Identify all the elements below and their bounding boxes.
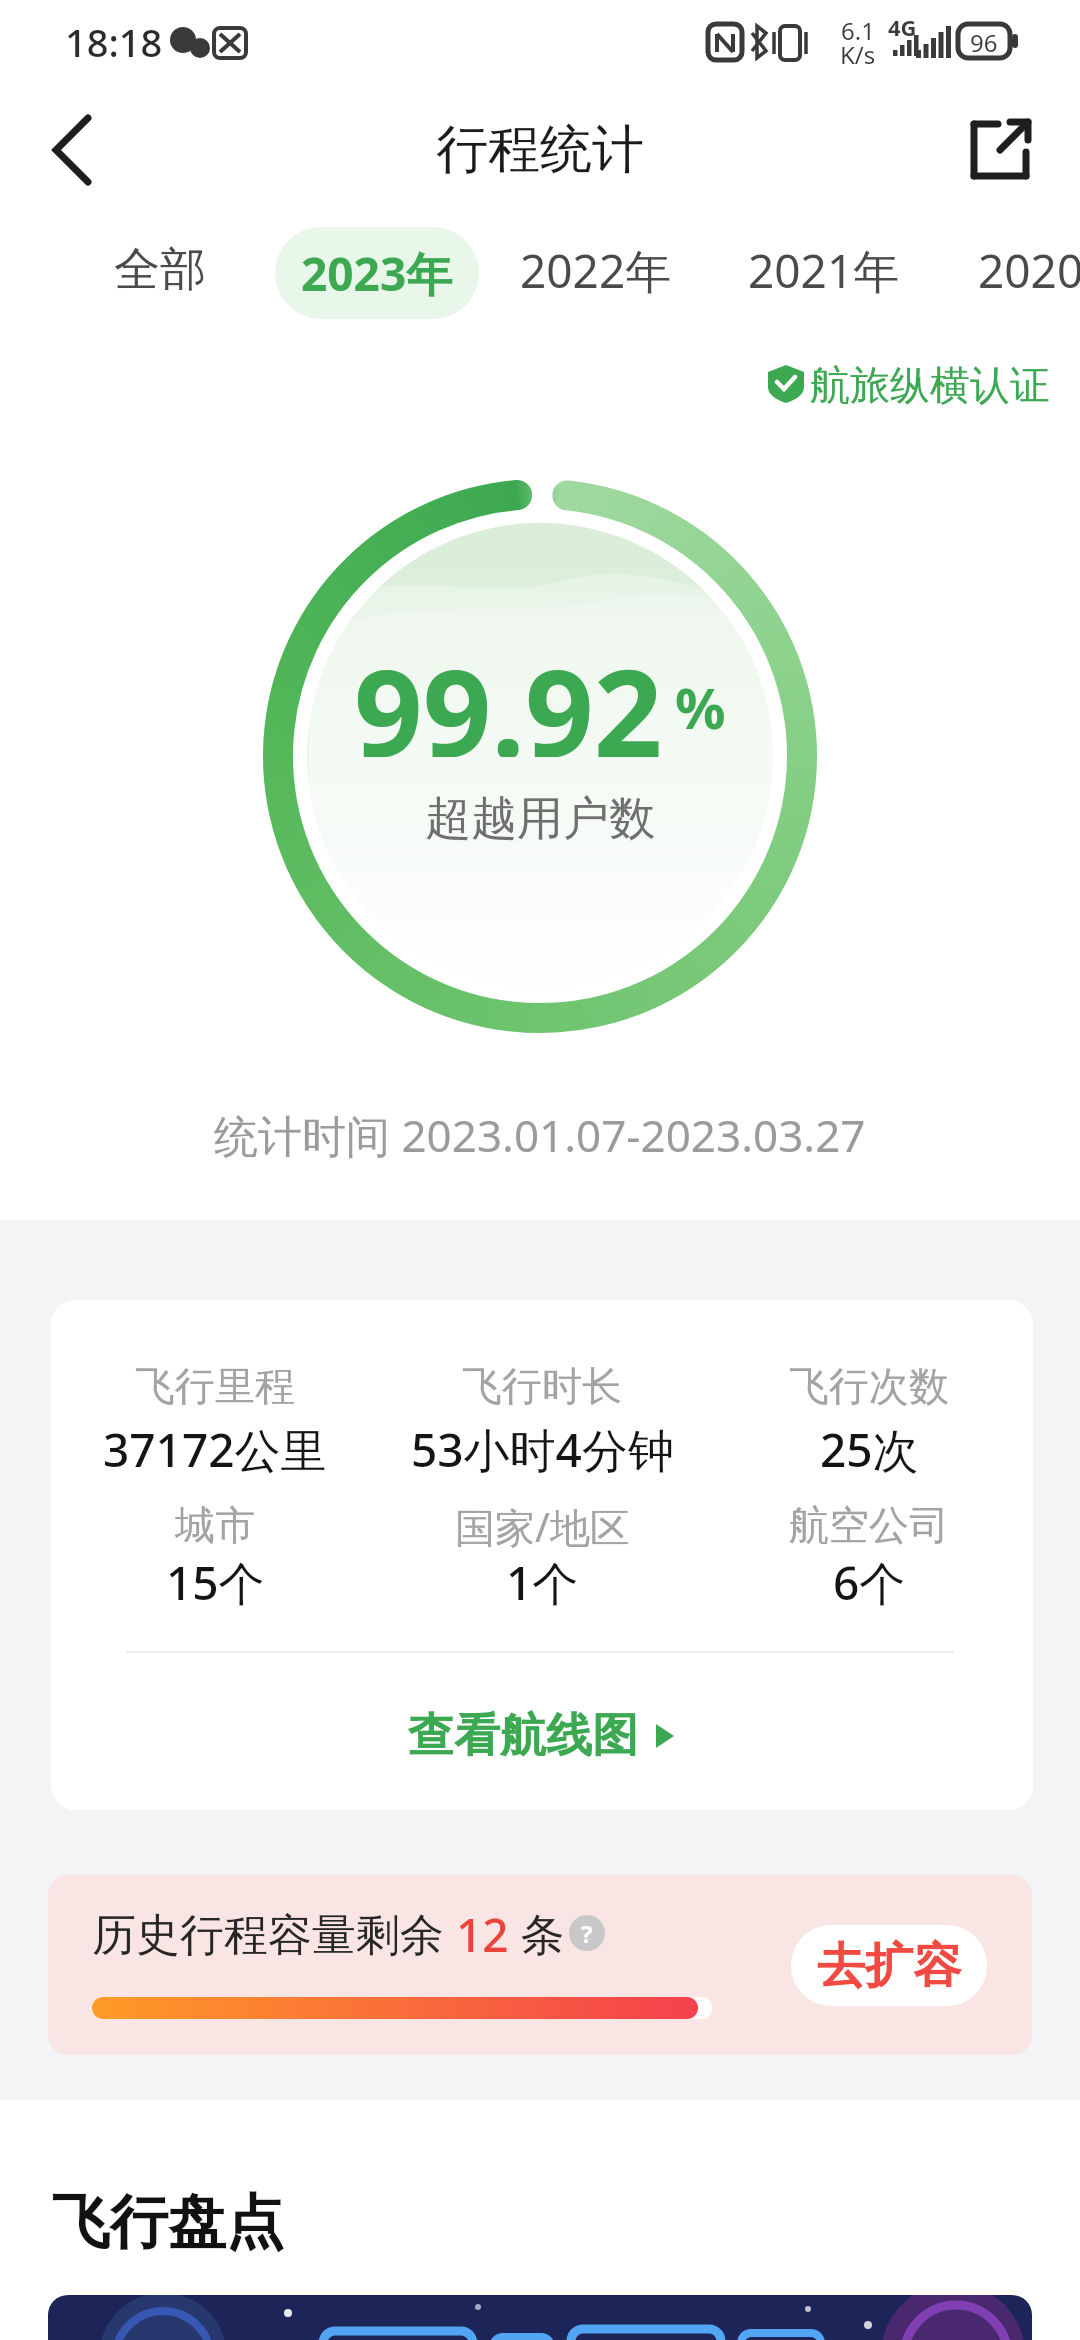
staticText: 96 <box>970 26 998 56</box>
staticText: 99.92 <box>354 629 663 757</box>
button[interactable] <box>960 110 1040 190</box>
staticText: 飞行次数 <box>789 1361 949 1411</box>
staticText: K/s <box>840 38 876 68</box>
staticText: 飞行盘点 <box>52 2186 284 2256</box>
button[interactable]: 去扩容 <box>791 1925 987 2006</box>
staticText: 行程统计 <box>436 117 644 183</box>
staticText: 12 <box>456 1903 509 1963</box>
staticText: 6.1 <box>841 14 875 44</box>
button[interactable]: 航旅纵横认证 <box>740 350 1050 420</box>
staticText: 2021年 <box>748 239 900 302</box>
staticText: 2023年 <box>301 242 453 305</box>
staticText: 15个 <box>166 1551 265 1609</box>
staticText: 2020 <box>978 239 1080 302</box>
staticText: 国家/地区 <box>455 1499 630 1551</box>
staticText: 航旅纵横认证 <box>810 360 1050 410</box>
staticText: 37172公里 <box>103 1418 327 1476</box>
staticText: 超越用户数 <box>425 790 655 848</box>
staticText: 查看航线图 <box>408 1707 638 1765</box>
staticText: % <box>675 669 726 745</box>
staticText: 航空公司 <box>789 1500 949 1550</box>
staticText: 4G <box>888 12 917 38</box>
staticText: 历史行程容量剩余 <box>92 1903 456 1963</box>
button[interactable]: 查看航线图 <box>51 1700 1033 1772</box>
button[interactable]: 2023年 <box>275 227 479 319</box>
staticText: 6个 <box>833 1551 906 1609</box>
staticText: 25次 <box>820 1418 919 1476</box>
staticText: 去扩容 <box>817 1936 961 1996</box>
staticText: 飞行里程 <box>135 1361 295 1411</box>
button[interactable]: 历史行程容量剩余 <box>48 1875 1032 2055</box>
staticText: 飞行时长 <box>462 1361 622 1411</box>
button[interactable]: 2022年 <box>496 210 696 330</box>
button[interactable] <box>30 110 110 190</box>
staticText: 条 <box>509 1903 565 1963</box>
staticText: 53小时4分钟 <box>411 1418 674 1476</box>
button[interactable]: 2021年 <box>724 210 924 330</box>
staticText: 2022年 <box>520 239 672 302</box>
button[interactable]: 全部 <box>110 210 210 330</box>
staticText: 18:18 <box>65 16 163 64</box>
staticText: 1个 <box>506 1551 579 1609</box>
staticText: 统计时间 2023.01.07-2023.03.27 <box>214 1105 866 1165</box>
staticText: 城市 <box>175 1500 255 1550</box>
staticText: 全部 <box>114 241 206 299</box>
button[interactable]: 2020 <box>978 210 1080 330</box>
staticText: ? <box>581 1917 593 1950</box>
